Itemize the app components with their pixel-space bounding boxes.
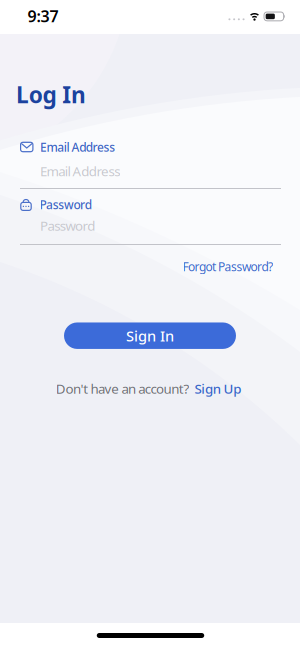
staticText: Email Address xyxy=(40,162,120,180)
button[interactable]: Sign In xyxy=(64,322,236,349)
staticText: Sign In xyxy=(126,326,174,345)
button[interactable]: Sign Up xyxy=(194,380,241,397)
staticText: Don't have an account? xyxy=(56,380,189,397)
staticText: Email Address xyxy=(40,139,115,155)
staticText: Log In xyxy=(16,79,86,109)
staticText: Password xyxy=(39,196,92,212)
staticText: Forgot Password? xyxy=(182,258,273,274)
staticText: 9:37 xyxy=(27,5,58,27)
staticText: Sign Up xyxy=(194,380,241,397)
staticText: Password xyxy=(40,217,95,234)
button[interactable]: Forgot Password? xyxy=(182,258,273,274)
